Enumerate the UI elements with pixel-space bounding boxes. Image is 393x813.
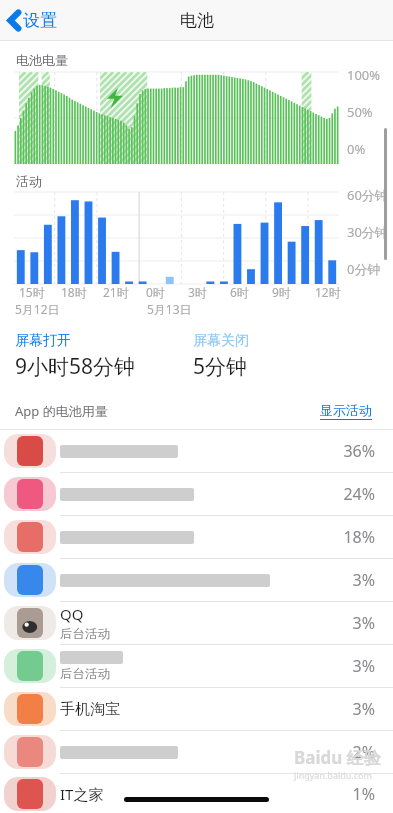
button[interactable]: 24% [0, 473, 393, 515]
staticText: jingyan.baidu.com [294, 769, 372, 781]
staticText: 3% [352, 569, 375, 591]
staticText: 6时 [230, 284, 249, 300]
button[interactable]: 2% [0, 731, 393, 773]
staticText: 后台活动 [60, 626, 110, 642]
staticText: 屏幕关闭 [193, 332, 249, 350]
button[interactable]: QQ [0, 602, 393, 644]
staticText: 5月13日 [147, 301, 192, 317]
staticText: QQ [60, 604, 84, 624]
staticText: 100% [347, 66, 381, 84]
button[interactable]: 设置 [0, 4, 67, 37]
button[interactable]: 36% [0, 430, 393, 472]
staticText: 电池 [180, 10, 214, 31]
staticText: 0时 [146, 284, 165, 300]
staticText: 50% [347, 103, 373, 121]
staticText: App 的电池用量 [15, 402, 108, 420]
staticText: 9时 [272, 284, 291, 300]
button[interactable]: 后台活动 [0, 645, 393, 687]
staticText: 0% [347, 140, 366, 158]
staticText: 0分钟 [347, 260, 381, 278]
staticText: 屏幕打开 [15, 332, 71, 350]
staticText: 3% [352, 612, 375, 634]
staticText: 15时 [19, 284, 45, 300]
staticText: 30分钟 [347, 223, 388, 241]
staticText: Baidu 经验 [294, 746, 381, 769]
staticText: 后台活动 [60, 666, 110, 682]
staticText: 18% [343, 526, 375, 548]
button[interactable]: 3% [0, 559, 393, 601]
staticText: 3% [352, 655, 375, 677]
staticText: 显示活动 [320, 402, 372, 418]
staticText: 24% [343, 483, 375, 505]
button[interactable]: 显示活动 [316, 398, 376, 424]
staticText: 9小时58分钟 [15, 352, 136, 381]
staticText: 5分钟 [193, 352, 248, 381]
staticText: IT之家 [60, 784, 104, 804]
button[interactable]: 手机淘宝 [0, 688, 393, 730]
button[interactable]: 18% [0, 516, 393, 558]
staticText: 活动 [16, 173, 42, 189]
staticText: 3% [352, 698, 375, 720]
staticText: 18时 [61, 284, 87, 300]
staticText: 手机淘宝 [60, 700, 120, 719]
staticText: 36% [343, 440, 375, 462]
staticText: 12时 [315, 284, 341, 300]
staticText: 60分钟 [347, 186, 388, 204]
staticText: 5月12日 [15, 301, 60, 317]
staticText: 3时 [188, 284, 207, 300]
staticText: 电池电量 [16, 52, 68, 68]
staticText: 1% [352, 783, 375, 805]
button[interactable]: IT之家 [0, 774, 393, 813]
staticText: 21时 [103, 284, 129, 300]
staticText: 2% [352, 741, 375, 763]
staticText: 设置 [23, 10, 57, 31]
